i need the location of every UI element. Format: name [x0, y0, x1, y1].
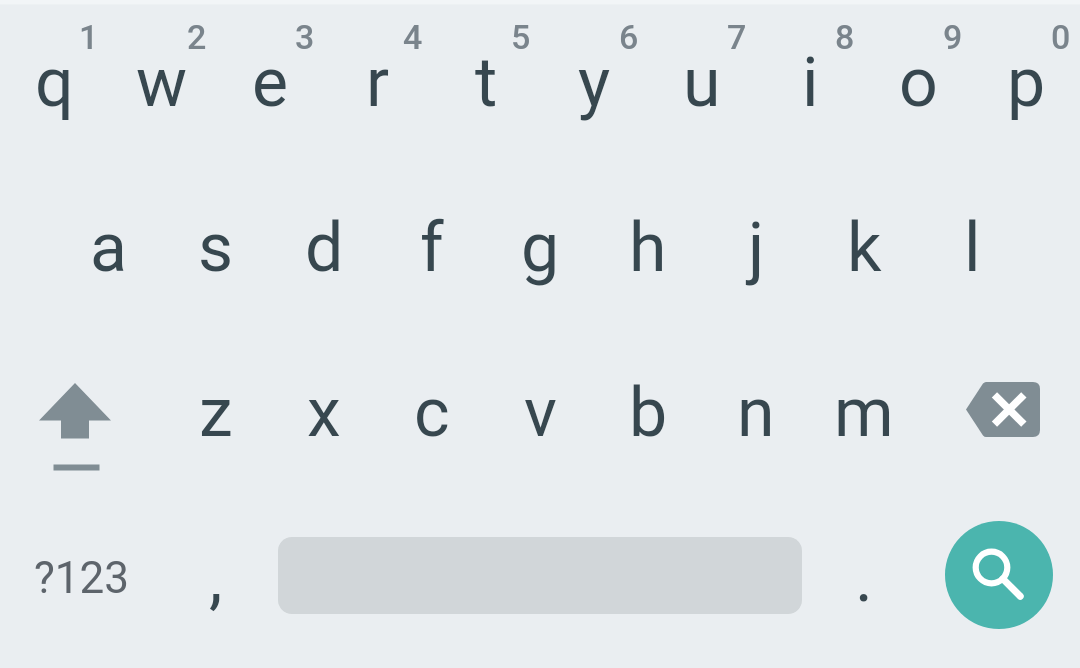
staticText: z	[199, 373, 233, 453]
button[interactable]: v	[486, 330, 594, 495]
staticText: e	[252, 43, 289, 123]
button[interactable]: k	[810, 165, 918, 330]
staticText: 6	[619, 17, 639, 57]
staticText: p	[1007, 43, 1046, 123]
staticText: 3	[295, 17, 315, 57]
staticText: v	[524, 373, 557, 453]
staticText: w	[136, 43, 188, 123]
staticText: j	[748, 208, 765, 288]
button[interactable]: ?123	[0, 495, 162, 660]
button[interactable]: g	[486, 165, 594, 330]
staticText: c	[414, 373, 450, 453]
staticText: o	[899, 43, 938, 123]
staticText: l	[964, 208, 981, 288]
button[interactable]: a	[54, 165, 162, 330]
staticText: 5	[511, 17, 531, 57]
button[interactable]: o	[864, 0, 972, 165]
staticText: 7	[727, 17, 747, 57]
staticText: t	[475, 43, 498, 123]
button[interactable]: i	[756, 0, 864, 165]
staticText: y	[578, 43, 611, 123]
staticText: g	[521, 208, 560, 288]
staticText: k	[847, 208, 882, 288]
button[interactable]: m	[810, 330, 918, 495]
button[interactable]: Shift	[0, 330, 162, 495]
button[interactable]: u	[648, 0, 756, 165]
staticText: x	[307, 373, 341, 453]
button[interactable]: n	[702, 330, 810, 495]
button[interactable]: f	[378, 165, 486, 330]
staticText: h	[629, 208, 667, 288]
button[interactable]: s	[162, 165, 270, 330]
staticText: m	[834, 373, 894, 453]
staticText: ?123	[34, 552, 129, 604]
staticText: r	[366, 43, 390, 123]
button[interactable]: j	[702, 165, 810, 330]
staticText: u	[683, 43, 721, 123]
button[interactable]: w	[108, 0, 216, 165]
button[interactable]: x	[270, 330, 378, 495]
staticText: f	[420, 208, 444, 288]
staticText: .	[855, 538, 873, 618]
staticText: i	[802, 43, 819, 123]
button[interactable]: Backspace	[918, 330, 1080, 495]
button[interactable]: q	[0, 0, 108, 165]
staticText: 9	[943, 17, 963, 57]
button[interactable]: r	[324, 0, 432, 165]
button[interactable]: d	[270, 165, 378, 330]
staticText: 0	[1051, 17, 1071, 57]
staticText: n	[737, 373, 775, 453]
button[interactable]: h	[594, 165, 702, 330]
staticText: b	[629, 373, 668, 453]
button[interactable]: z	[162, 330, 270, 495]
staticText: 8	[835, 17, 855, 57]
button[interactable]: b	[594, 330, 702, 495]
button[interactable]: e	[216, 0, 324, 165]
staticText: a	[90, 208, 127, 288]
staticText: d	[305, 208, 344, 288]
staticText: 2	[187, 17, 207, 57]
staticText: 1	[79, 17, 99, 57]
button[interactable]: c	[378, 330, 486, 495]
button[interactable]: .	[810, 495, 918, 660]
button[interactable]: l	[918, 165, 1026, 330]
staticText: s	[198, 208, 234, 288]
button[interactable]: Search	[945, 521, 1053, 629]
button[interactable]: p	[972, 0, 1080, 165]
button[interactable]: t	[432, 0, 540, 165]
staticText: ,	[209, 538, 223, 618]
button[interactable]: y	[540, 0, 648, 165]
staticText: 4	[403, 17, 423, 57]
button[interactable]: ,	[162, 495, 270, 660]
staticText: q	[35, 43, 74, 123]
